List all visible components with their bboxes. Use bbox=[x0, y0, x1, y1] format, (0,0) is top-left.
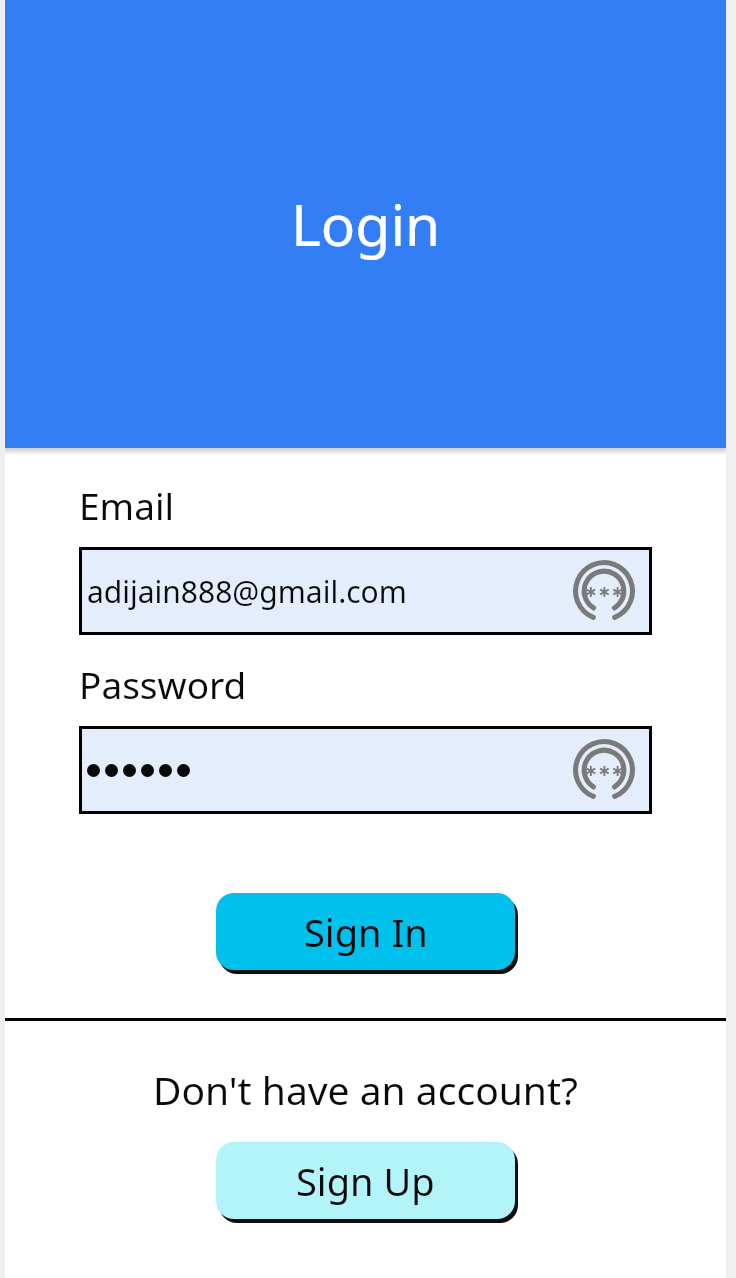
staticText: Login bbox=[291, 185, 441, 263]
staticText: Email bbox=[79, 480, 175, 530]
button[interactable]: Sign Up bbox=[216, 1142, 515, 1219]
other: Autofill bbox=[573, 739, 635, 801]
button[interactable]: adijain888@gmail.com bbox=[82, 550, 649, 632]
staticText: ∗∗∗ bbox=[584, 582, 625, 601]
other: Autofill bbox=[573, 560, 635, 622]
staticText: Password bbox=[79, 659, 247, 709]
button[interactable]: Sign In bbox=[216, 893, 515, 970]
button[interactable]: Autofill bbox=[82, 729, 649, 811]
staticText: Sign Up bbox=[296, 1155, 435, 1207]
staticText: adijain888@gmail.com bbox=[87, 571, 407, 612]
staticText: Don't have an account? bbox=[153, 1063, 578, 1116]
staticText: Sign In bbox=[304, 906, 428, 958]
staticText: ∗∗∗ bbox=[584, 761, 625, 780]
